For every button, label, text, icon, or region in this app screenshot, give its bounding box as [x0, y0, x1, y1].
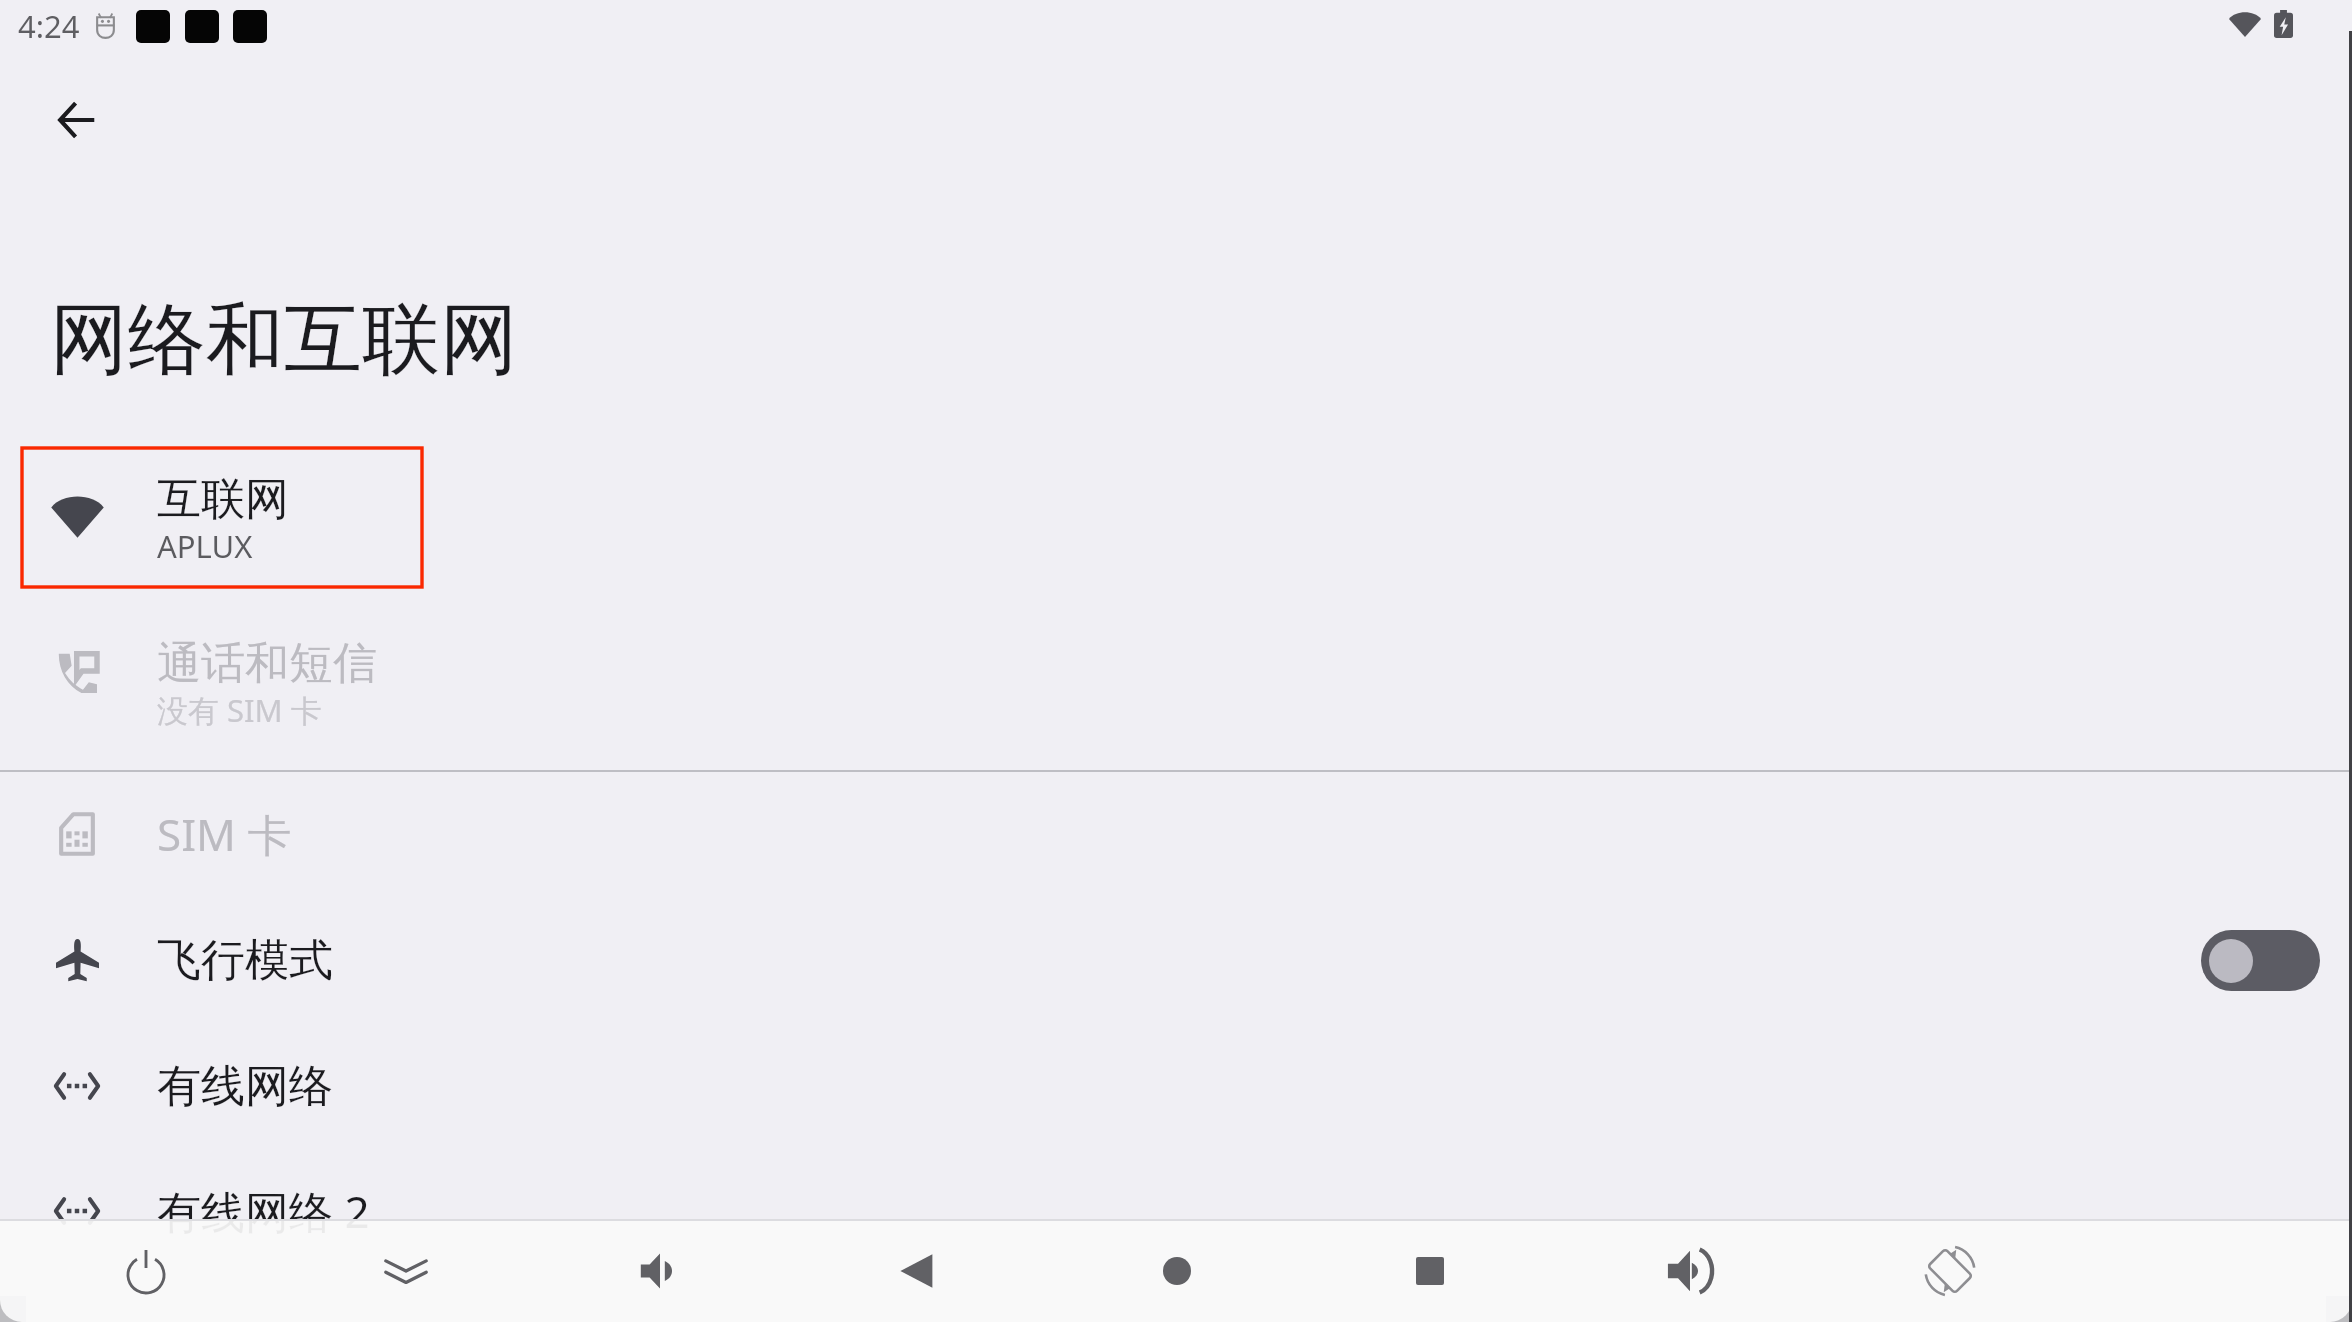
staticText: 有线网络 — [157, 1059, 333, 1114]
button[interactable]: Volume up — [1626, 1219, 1754, 1322]
staticText: 通话和短信 — [157, 636, 377, 691]
button[interactable]: SIM 卡 — [0, 771, 2352, 897]
staticText: SIM 卡 — [157, 804, 292, 864]
button[interactable]: Collapse — [342, 1219, 470, 1322]
button[interactable]: Back — [854, 1219, 982, 1322]
button[interactable]: Rotate — [1886, 1219, 2014, 1322]
staticText: 网络和互联网 — [50, 291, 518, 389]
button[interactable]: 通话和短信 — [0, 599, 2352, 769]
staticText: 没有 SIM 卡 — [157, 689, 322, 731]
button[interactable]: Airplane mode toggle — [2201, 930, 2320, 991]
staticText: 有线网络 2 — [157, 1181, 370, 1241]
staticText: 互联网 — [157, 472, 289, 527]
button[interactable]: Home — [1113, 1219, 1241, 1322]
button[interactable]: 互联网 — [0, 446, 2352, 599]
button[interactable]: Volume down — [596, 1219, 724, 1322]
staticText: APLUX — [157, 525, 253, 567]
staticText: 飞行模式 — [157, 933, 333, 988]
button[interactable]: Power — [82, 1219, 210, 1322]
button[interactable]: 飞行模式 — [0, 897, 2352, 1023]
button[interactable]: 有线网络 2 — [0, 1148, 2352, 1274]
button[interactable]: Back — [38, 81, 116, 159]
button[interactable]: 有线网络 — [0, 1023, 2352, 1149]
button[interactable]: Recents — [1366, 1219, 1494, 1322]
staticText: 4:24 — [18, 5, 80, 47]
